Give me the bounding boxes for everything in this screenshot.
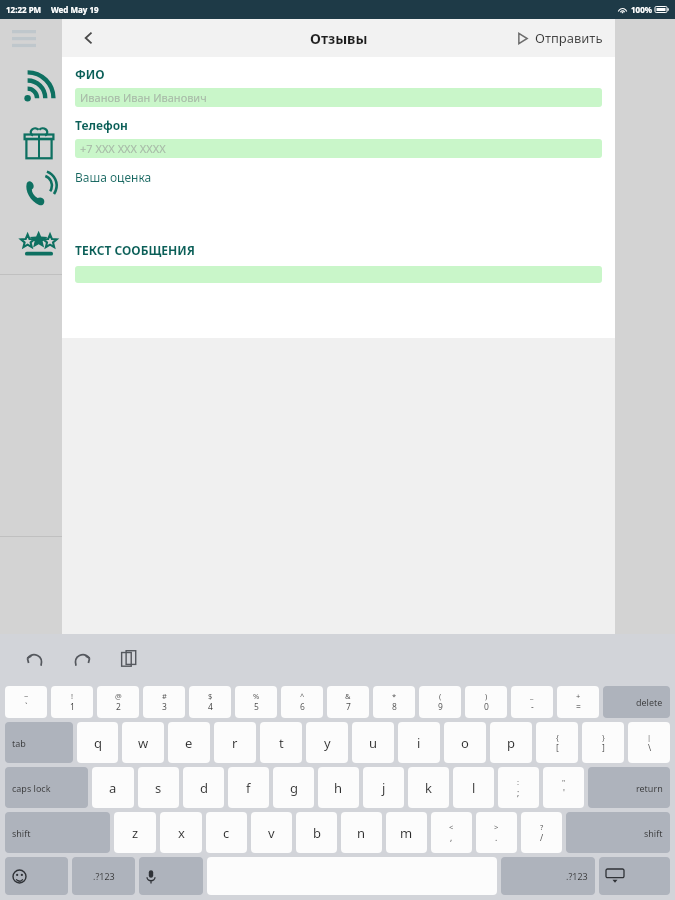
button[interactable]: : [498,767,539,808]
button[interactable]: j [363,767,404,808]
button[interactable]: k [408,767,449,808]
staticText: shift [644,827,663,839]
staticText: } [602,732,605,742]
button[interactable]: l [453,767,494,808]
button[interactable]: ( [419,686,461,718]
button[interactable]: Menu [10,24,38,52]
staticText: o [461,734,469,752]
button[interactable]: v [251,812,292,853]
button[interactable]: e [168,722,210,763]
button[interactable]: Hide keyboard [599,857,670,895]
button[interactable]: Dictation [139,857,203,895]
staticText: m [400,824,413,842]
button[interactable]: } [582,722,624,763]
button[interactable]: % [235,686,277,718]
button[interactable]: Redo [67,644,97,674]
button[interactable]: w [122,722,164,763]
button[interactable]: { [536,722,578,763]
button[interactable]: h [318,767,359,808]
staticText: x [178,824,185,842]
staticText: 5 [254,701,259,713]
button[interactable]: c [206,812,247,853]
button[interactable]: shift [566,812,670,853]
button[interactable]: Undo [20,644,50,674]
staticText: r [232,734,238,752]
staticText: @ [115,691,122,701]
button[interactable]: Отправить [512,23,607,53]
button[interactable]: & [327,686,369,718]
button[interactable]: " [543,767,584,808]
staticText: * [392,691,397,701]
button[interactable]: u [352,722,394,763]
button[interactable]: .?123 [501,857,595,895]
staticText: g [290,779,298,797]
staticText: shift [12,827,31,839]
button[interactable]: Paste [114,644,144,674]
button[interactable]: o [444,722,486,763]
staticText: 1 [70,701,75,713]
button[interactable]: + [557,686,599,718]
staticText: ^ [300,691,305,701]
staticText: ~ [24,691,29,701]
button[interactable]: ! [51,686,93,718]
button[interactable]: ) [465,686,507,718]
button[interactable]: Gifts [14,116,64,166]
button[interactable]: +7 XXX XXX XXXX [75,139,602,158]
button[interactable]: a [92,767,134,808]
button[interactable]: m [386,812,427,853]
button[interactable]: _ [511,686,553,718]
button[interactable]: Call [14,167,64,217]
button[interactable]: shift [5,812,110,853]
button[interactable]: f [228,767,269,808]
staticText: a [109,779,117,797]
button[interactable]: $ [189,686,231,718]
button[interactable]: caps lock [5,767,88,808]
button[interactable]: News [14,61,64,111]
staticText: t [279,734,284,752]
button[interactable]: .?123 [72,857,135,895]
button[interactable]: x [160,812,202,853]
staticText: Отзывы [310,29,368,48]
button[interactable]: < [431,812,472,853]
button[interactable]: Reviews [14,218,64,268]
button[interactable]: Иванов Иван Иванович [75,88,602,107]
button[interactable]: delete [603,686,670,718]
button[interactable]: n [341,812,382,853]
staticText: ? [540,822,544,832]
staticText: 3 [162,701,167,713]
button[interactable]: i [398,722,440,763]
button[interactable]: ? [521,812,562,853]
button[interactable]: t [260,722,302,763]
staticText: ФИО [75,66,105,82]
staticText: < [449,822,454,832]
button[interactable]: s [138,767,179,808]
button[interactable]: p [490,722,532,763]
button[interactable]: y [306,722,348,763]
button[interactable]: Emoji [5,857,68,895]
button[interactable]: Back [72,21,106,55]
staticText: l [472,779,476,797]
button[interactable]: return [588,767,670,808]
staticText: 0 [484,701,489,713]
staticText: 100% [631,4,652,15]
button[interactable]: @ [97,686,139,718]
button[interactable]: > [476,812,517,853]
button[interactable]: * [373,686,415,718]
staticText: u [369,734,378,752]
staticText: # [162,691,167,701]
button[interactable]: q [77,722,118,763]
button[interactable]: # [143,686,185,718]
staticText: v [268,824,275,842]
button[interactable]: ^ [281,686,323,718]
button[interactable]: tab [5,722,73,763]
button[interactable]: b [296,812,337,853]
button[interactable]: | [628,722,670,763]
button[interactable]: z [114,812,156,853]
button[interactable]: ~ [5,686,47,718]
button[interactable]: r [214,722,256,763]
staticText: _ [530,691,534,701]
button[interactable]: g [273,767,314,808]
button[interactable]: d [183,767,224,808]
